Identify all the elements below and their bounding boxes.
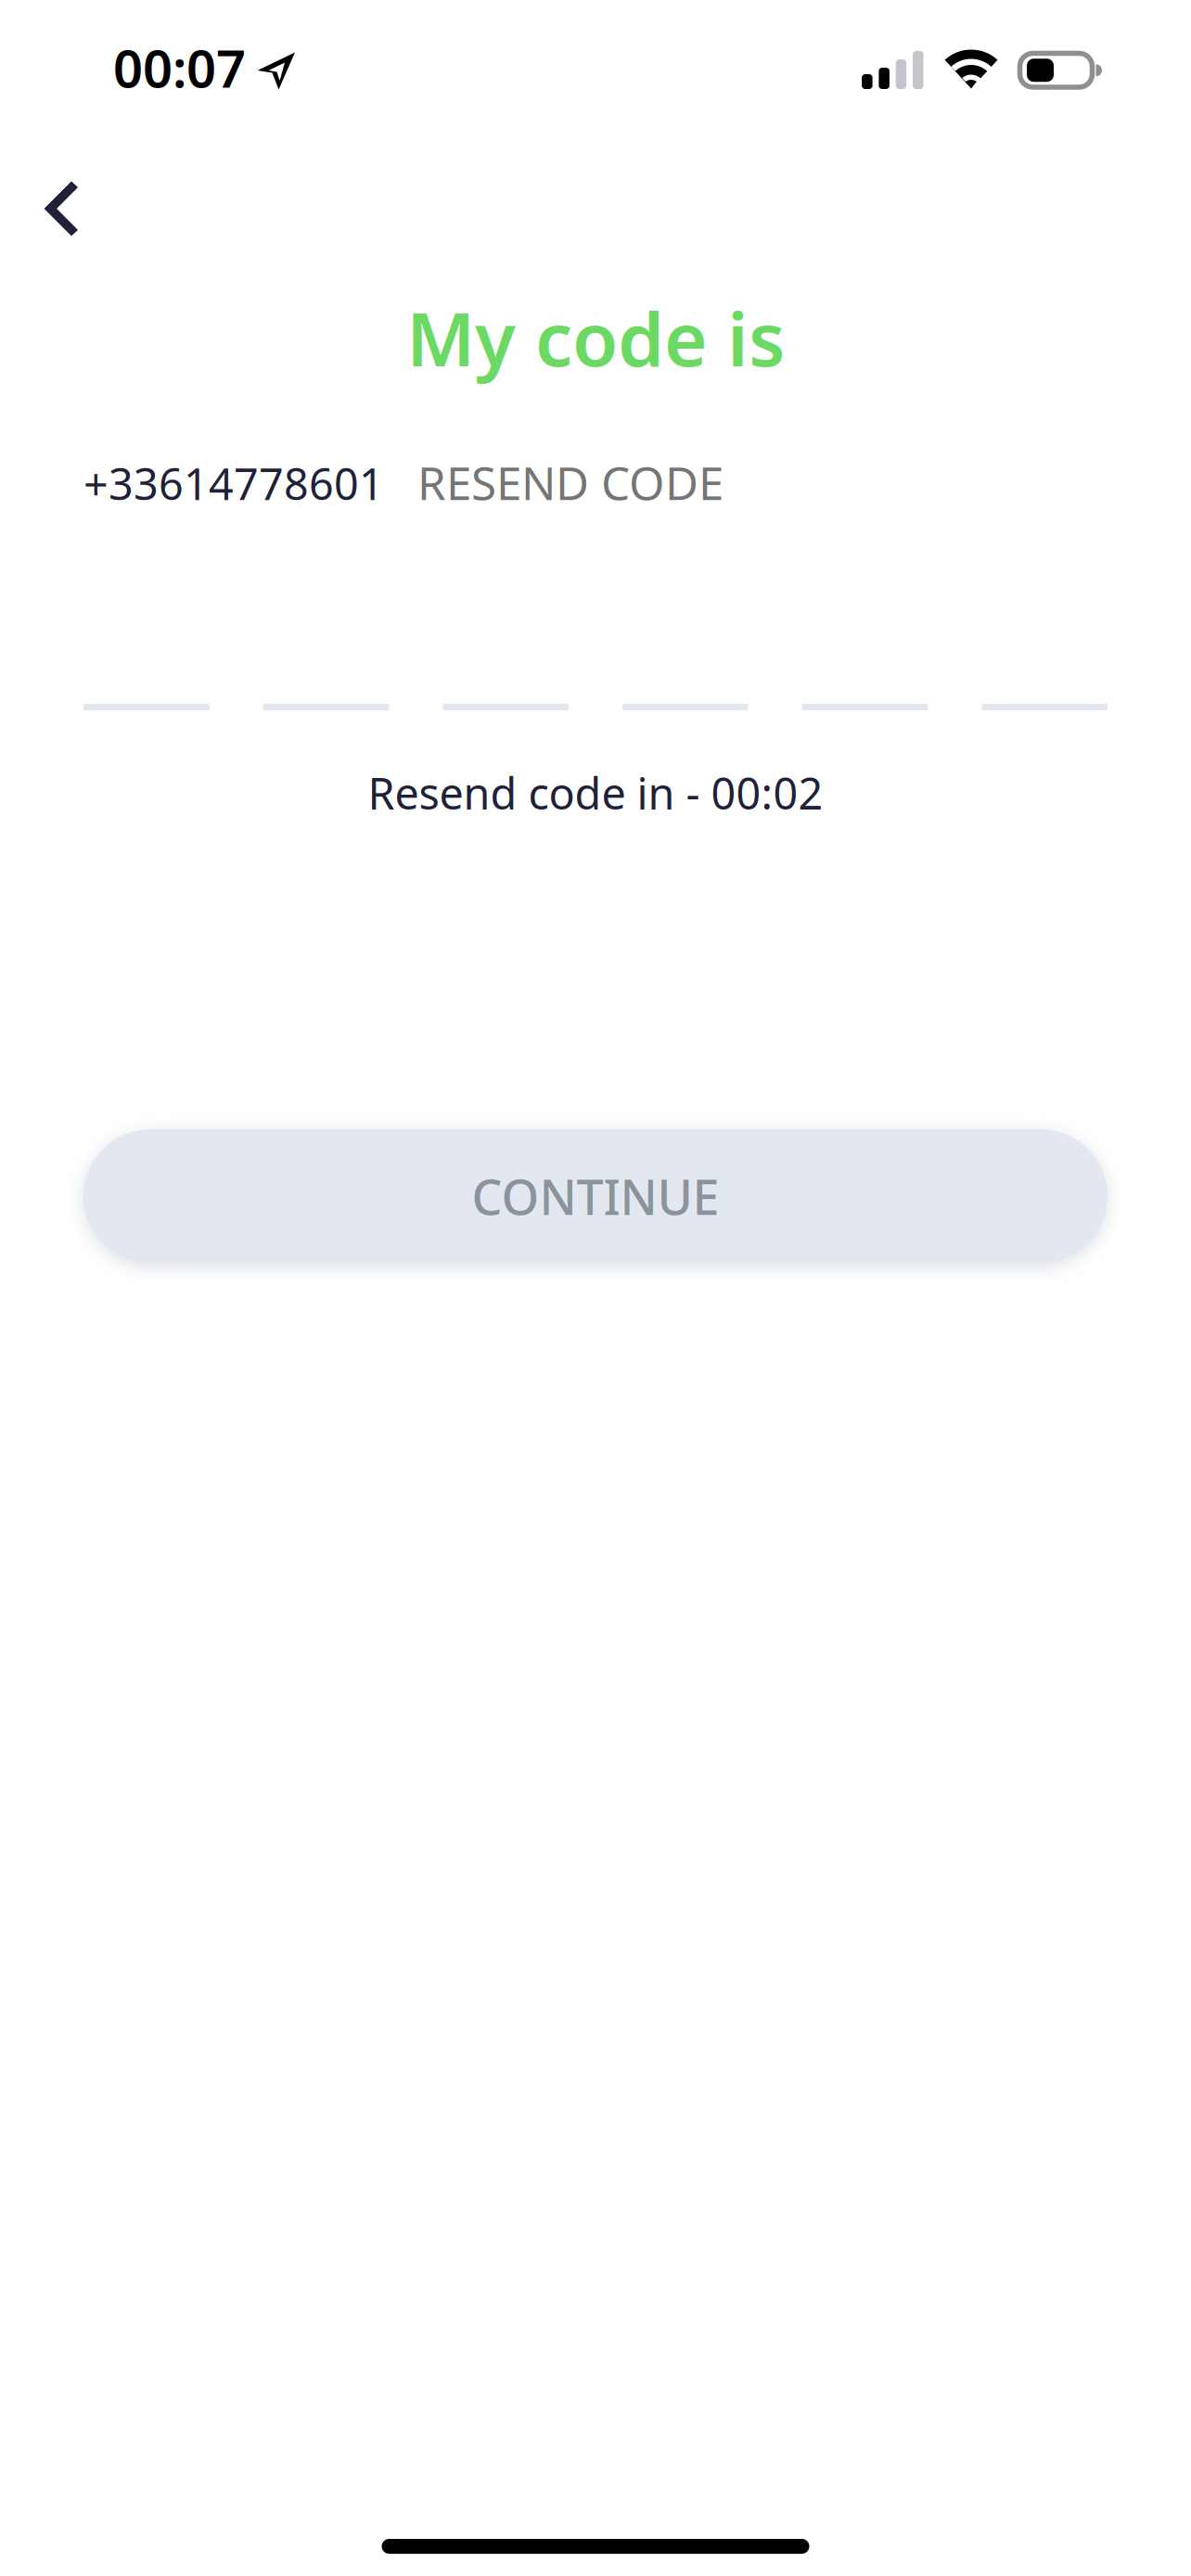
staticText: +33614778601 [83,454,384,512]
staticText: Resend code in - 00:02 [368,764,823,822]
staticText: My code is [406,288,785,387]
button[interactable]: Back [9,157,113,261]
staticText: RESEND CODE [417,452,724,513]
button[interactable]: CONTINUE [83,1129,1108,1263]
staticText: 00:07 [113,33,246,102]
staticText: CONTINUE [472,1164,719,1228]
button[interactable]: RESEND CODE [417,452,724,513]
